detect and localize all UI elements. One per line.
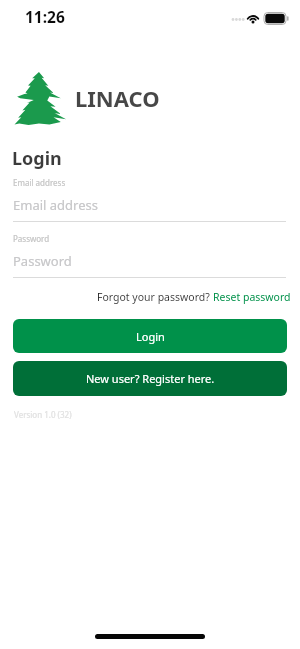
staticText: Version 1.0 (32): [14, 409, 72, 420]
button[interactable]: Reset password: [213, 290, 291, 304]
staticText: 11:26: [25, 6, 65, 27]
button[interactable]: Email address: [13, 194, 287, 222]
button[interactable]: Login: [13, 319, 287, 353]
button[interactable]: New user? Register here.: [13, 361, 287, 396]
staticText: Forgot your password?: [97, 290, 213, 304]
staticText: New user? Register here.: [86, 371, 215, 386]
staticText: Password: [13, 233, 50, 244]
staticText: LINACO: [75, 83, 160, 113]
staticText: Login: [136, 329, 165, 344]
staticText: Email address: [13, 177, 66, 188]
button[interactable]: Password: [13, 250, 287, 277]
staticText: Login: [12, 146, 62, 171]
staticText: Email address: [13, 196, 98, 214]
staticText: Password: [13, 252, 72, 270]
